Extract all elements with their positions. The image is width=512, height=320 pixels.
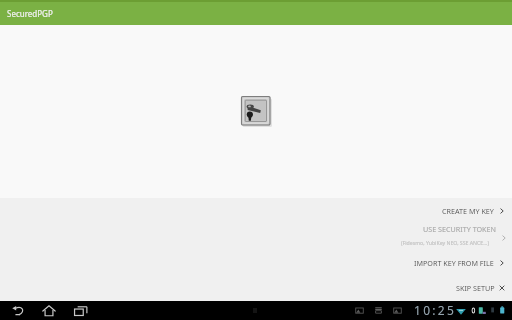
button[interactable]: USE SECURITY TOKEN (260, 219, 512, 252)
staticText: SKIP SETUP (456, 283, 495, 293)
button[interactable]: Back (9, 301, 28, 320)
button[interactable]: SecuredPGP (0, 0, 512, 25)
button[interactable]: Recent apps (71, 301, 90, 320)
button[interactable]: CREATE MY KEY (260, 203, 512, 219)
staticText: IMPORT KEY FROM FILE (414, 258, 494, 268)
button[interactable]: IMPORT KEY FROM FILE (260, 255, 512, 271)
button[interactable]: 10:25 (414, 302, 457, 318)
button[interactable]: SKIP SETUP (260, 280, 512, 296)
staticText: USE SECURITY TOKEN (423, 224, 497, 234)
staticText: CREATE MY KEY (442, 206, 494, 216)
button[interactable]: Home (39, 301, 58, 320)
staticText: SecuredPGP (7, 8, 53, 19)
staticText: (Fidesmo, YubiKey NEO, SSE ANCE...) (401, 239, 489, 246)
